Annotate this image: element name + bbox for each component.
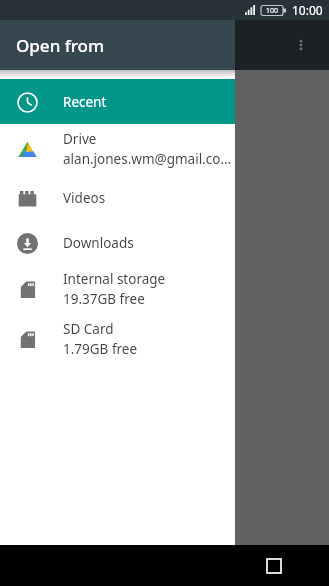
staticText: Downloads (63, 234, 134, 252)
button[interactable]: More options (281, 25, 321, 65)
staticText: Open from (16, 34, 105, 57)
staticText: 19.37GB free (63, 290, 145, 308)
staticText: Recent (63, 93, 107, 111)
button[interactable]: Drive (0, 124, 235, 173)
staticText: 10:00 (292, 2, 323, 18)
button[interactable]: Recent (0, 79, 235, 124)
button[interactable]: SD Card (0, 314, 235, 364)
staticText: 100 (266, 6, 279, 16)
button[interactable]: Downloads (0, 222, 235, 264)
staticText: Internal storage (63, 270, 166, 288)
staticText: Videos (63, 189, 106, 207)
staticText: SD Card (63, 320, 114, 338)
button[interactable]: Internal storage (0, 264, 235, 314)
staticText: alan.jones.wm@gmail.co… (63, 150, 232, 168)
staticText: Drive (63, 130, 97, 148)
button[interactable]: Videos (0, 173, 235, 222)
staticText: 1.79GB free (63, 340, 138, 358)
button[interactable]: Recent apps (219, 545, 329, 586)
